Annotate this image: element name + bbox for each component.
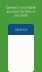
staticText: account for free in <box>6 10 35 13</box>
staticText: Connect your bank <box>6 6 36 9</box>
staticText: seconds <box>14 14 28 17</box>
staticText: balance <box>14 28 27 31</box>
